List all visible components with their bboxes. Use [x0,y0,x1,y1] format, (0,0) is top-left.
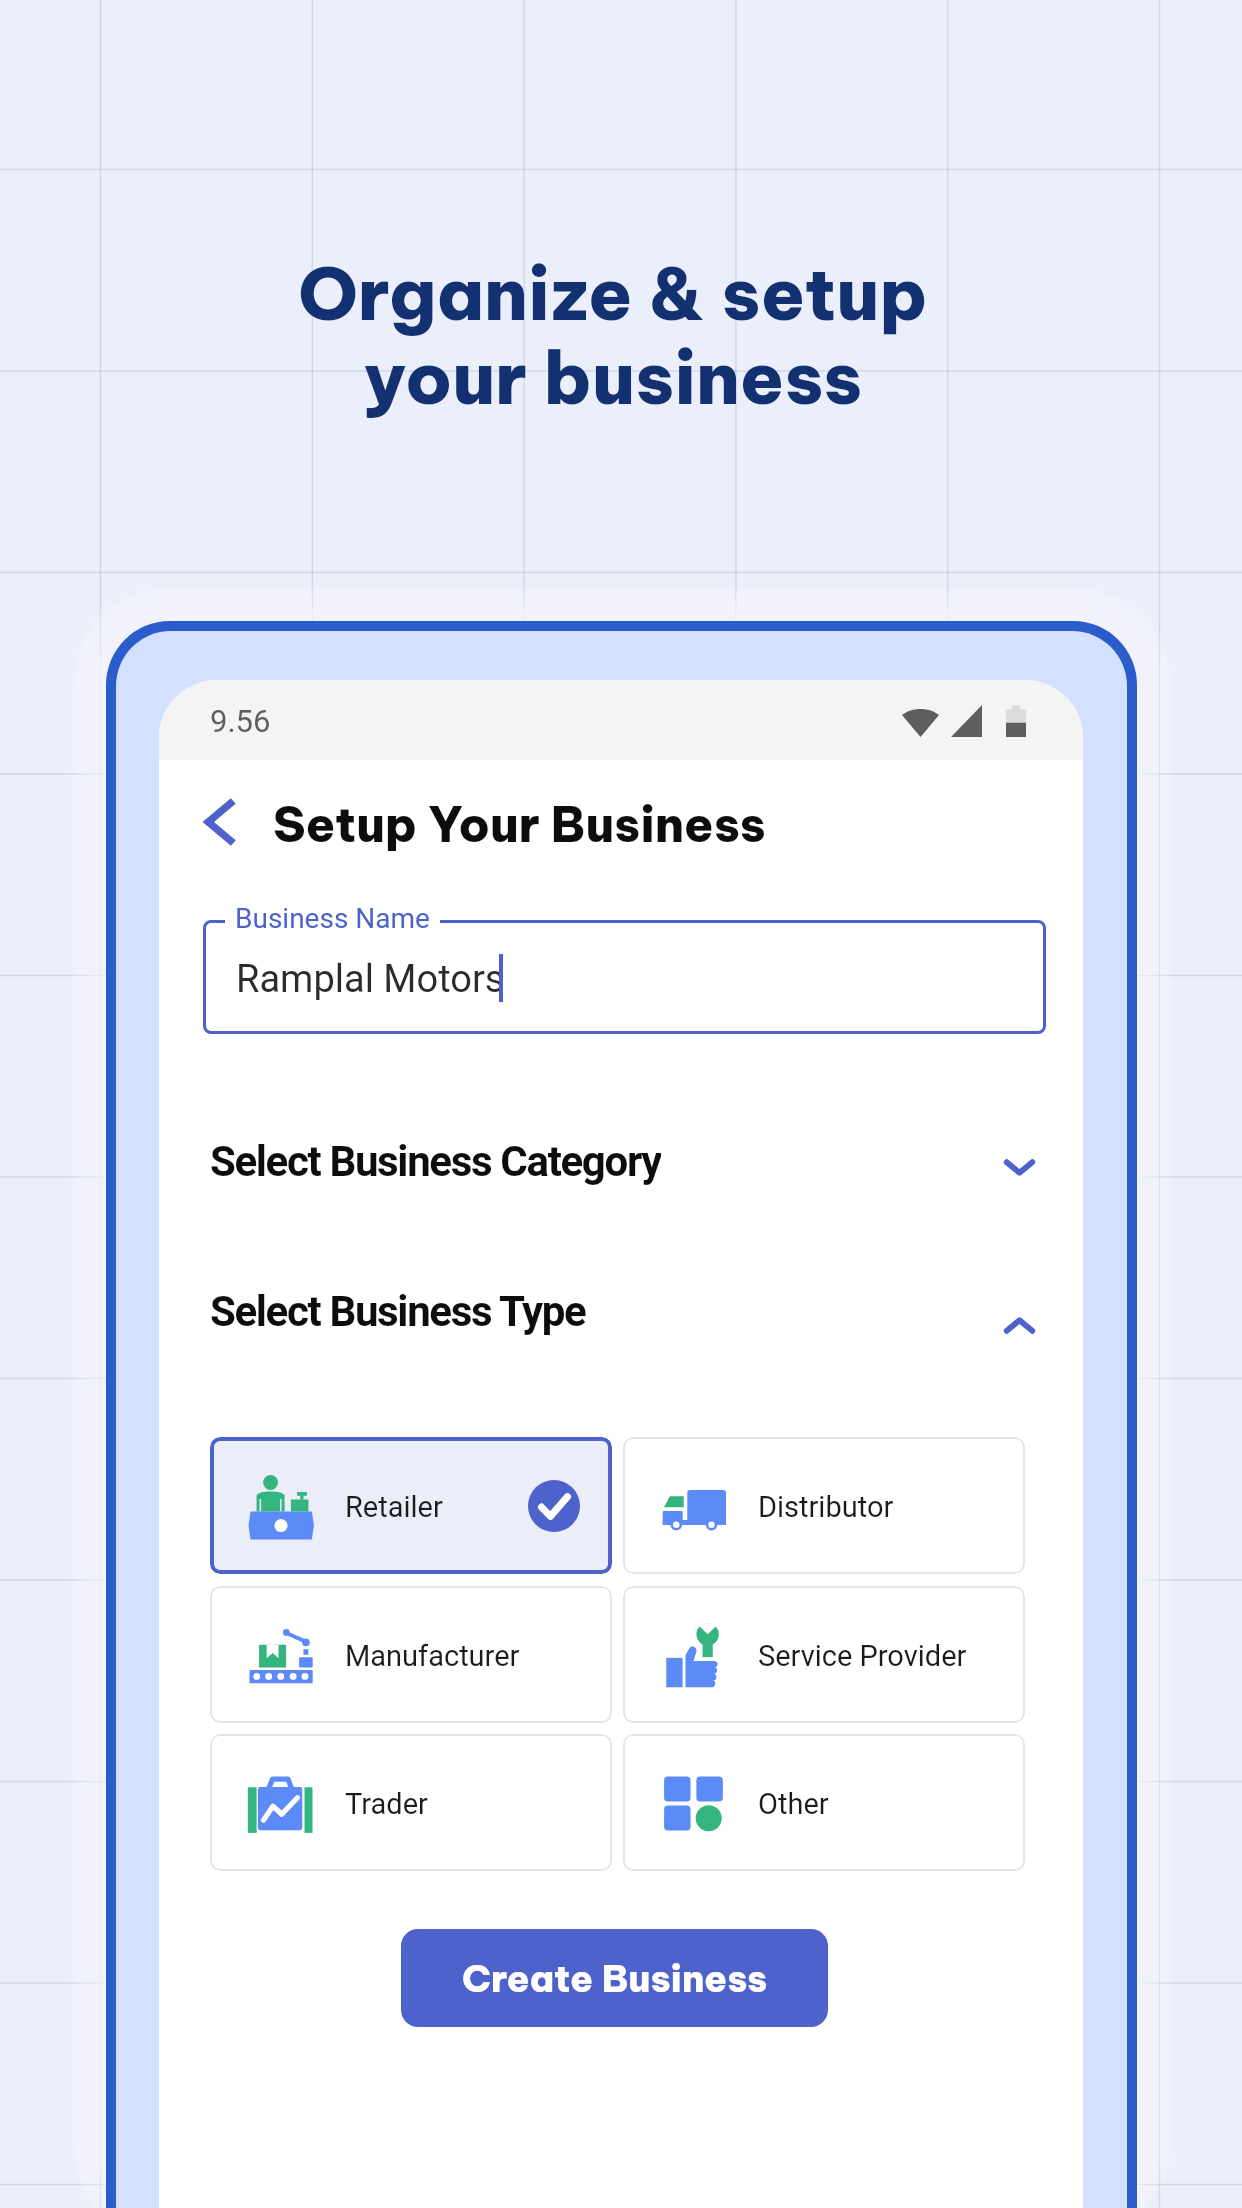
staticText: Distributor [758,1490,894,1524]
staticText: Other [758,1787,829,1821]
staticText: Setup Your Business [273,794,766,855]
button[interactable]: Select Business Type [210,1287,1034,1335]
staticText: Manufacturer [345,1639,520,1673]
button[interactable]: Ramplal Motors [203,920,1046,1034]
staticText: Retailer [345,1490,443,1524]
button[interactable]: Create Business [401,1929,828,2027]
staticText: Ramplal Motors [236,957,505,1002]
button[interactable]: Distributor [623,1437,1025,1574]
button[interactable]: Retailer [210,1437,612,1574]
button[interactable]: Select Business Category [210,1137,1034,1185]
button[interactable]: Other [623,1734,1025,1871]
button[interactable]: Back [205,794,234,850]
staticText: 9.56 [210,703,271,739]
button[interactable]: Trader [210,1734,612,1871]
button[interactable]: Service Provider [623,1586,1025,1723]
staticText: Business Name [235,902,430,935]
staticText: Service Provider [758,1639,967,1673]
button[interactable]: Manufacturer [210,1586,612,1723]
staticText: Organize & setup your business [0,248,1234,423]
staticText: Create Business [462,1955,768,2002]
staticText: Select Business Category [210,1137,661,1185]
staticText: Select Business Type [210,1287,586,1335]
staticText: Trader [345,1787,428,1821]
